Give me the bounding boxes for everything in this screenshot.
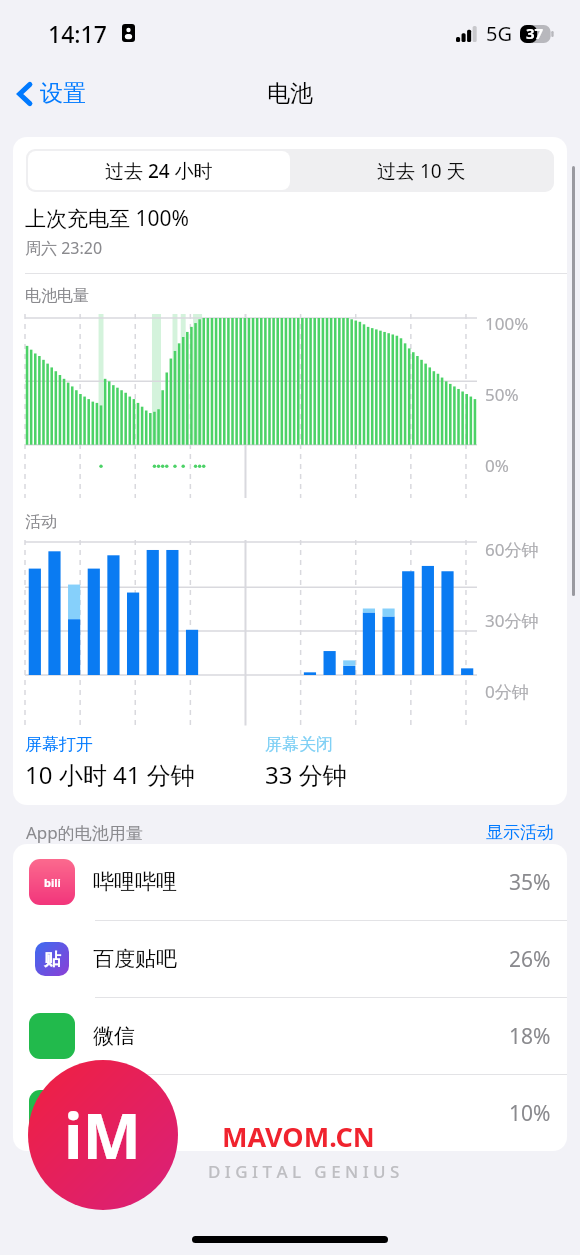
staticText: 5G [486,20,512,47]
staticText: 10% [509,1099,551,1128]
staticText: 33 分钟 [265,758,347,791]
staticText: 37 [526,23,544,43]
staticText: 哔哩哔哩 [93,869,177,895]
staticText: 电池电量 [25,286,89,306]
staticText: 35% [509,868,551,897]
staticText: 屏幕关闭 [265,734,333,755]
staticText: bili [44,875,61,890]
button[interactable]: 显示活动 [486,822,554,843]
staticText: 100% [485,312,529,335]
button[interactable]: 过去 24 小时 [28,151,290,190]
staticText: App的电池用量 [26,821,143,844]
staticText: D I G I T A L G E N I U S [208,1160,400,1183]
staticText: 10 小时 41 分钟 [25,758,195,791]
staticText: 0% [485,454,509,477]
button[interactable]: 10% [13,1075,567,1151]
staticText: 30分钟 [485,609,539,632]
staticText: 18% [509,1022,551,1051]
staticText: 上次充电至 100% [25,204,189,233]
button[interactable]: bili [13,844,567,920]
button[interactable]: 过去 10 天 [290,151,552,190]
staticText: 过去 10 天 [377,158,466,184]
staticText: 50% [485,383,519,406]
staticText: 百度贴吧 [93,946,177,972]
staticText: 0分钟 [485,680,529,703]
staticText: 显示活动 [486,822,554,843]
button[interactable]: 设置 [12,73,92,114]
staticText: 14:17 [48,18,107,49]
staticText: 60分钟 [485,538,539,561]
staticText: 周六 23:20 [25,237,103,259]
staticText: 26% [509,945,551,974]
staticText: 贴 [44,949,61,970]
button[interactable]: 贴 [13,921,567,997]
staticText: MAVOM.CN [222,1118,375,1155]
staticText: 过去 24 小时 [105,158,213,184]
staticText: 设置 [40,79,86,108]
button[interactable]: 微信 [13,998,567,1074]
staticText: iM [64,1093,142,1177]
staticText: 屏幕打开 [25,734,93,755]
staticText: 活动 [25,512,57,532]
staticText: 微信 [93,1023,135,1049]
staticText: 电池 [267,79,313,108]
